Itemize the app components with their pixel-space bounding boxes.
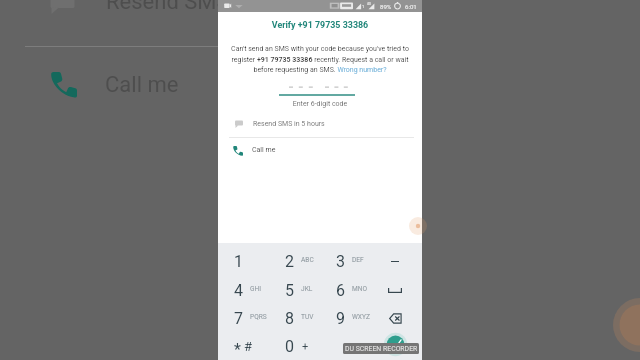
staticText: 3	[336, 252, 345, 271]
staticText: DEF	[352, 256, 364, 264]
staticText: PQRS	[250, 313, 267, 321]
other: Backspace	[389, 313, 402, 324]
staticText: 2	[285, 252, 294, 271]
button[interactable]	[320, 332, 371, 360]
button[interactable]: *	[218, 332, 269, 360]
staticText: 5	[285, 281, 294, 300]
staticText: Call me	[252, 146, 276, 154]
button[interactable]: Call me	[218, 139, 422, 161]
staticText: 1	[234, 252, 243, 271]
button[interactable]: 6	[320, 276, 371, 305]
button[interactable]: 8	[269, 304, 320, 333]
staticText: 0	[285, 337, 294, 356]
button[interactable]: 7	[218, 304, 269, 333]
staticText: 6	[336, 281, 345, 300]
button[interactable]: 0	[269, 332, 320, 360]
staticText: 4G	[367, 2, 371, 6]
button[interactable]: 4	[218, 276, 269, 305]
staticText: 7	[234, 309, 243, 328]
staticText: #	[244, 339, 253, 354]
staticText: Verify +91 79735 33386	[218, 20, 422, 30]
staticText: 8	[285, 309, 294, 328]
staticText: Can't send an SMS with your code because…	[228, 45, 412, 74]
button[interactable]: Resend SMS in 5 hours	[218, 114, 422, 133]
other: Space	[388, 287, 402, 293]
button[interactable]: Backspace	[371, 304, 422, 333]
button[interactable]: 2	[269, 247, 320, 276]
staticText: WXYZ	[352, 313, 370, 321]
staticText: TUV	[301, 313, 314, 321]
button[interactable]: 9	[320, 304, 371, 333]
staticText: 89%	[380, 3, 392, 10]
staticText: Enter 6-digit code	[218, 100, 422, 108]
staticText: Call me	[105, 72, 179, 98]
staticText: 1	[362, 4, 365, 9]
staticText: Resend SMS	[106, 0, 230, 15]
staticText: DU SCREEN RECORDER	[345, 345, 418, 353]
button[interactable]: 3	[320, 247, 371, 276]
button[interactable]: Dash	[371, 247, 422, 276]
staticText: JKL	[301, 285, 313, 293]
staticText: 4	[234, 281, 243, 300]
staticText: ABC	[301, 256, 314, 264]
staticText: 9	[336, 309, 345, 328]
staticText: GHI	[250, 285, 261, 293]
staticText: +	[302, 340, 309, 353]
staticText: *	[234, 340, 241, 359]
button[interactable]: Confirm code	[383, 332, 408, 357]
button[interactable]: Space	[371, 276, 422, 305]
button[interactable]: Confirm code	[371, 332, 422, 360]
button[interactable]: 5	[269, 276, 320, 305]
button[interactable]: 1	[218, 247, 269, 276]
staticText: 6:01	[405, 3, 417, 10]
staticText: Resend SMS in 5 hours	[253, 120, 325, 128]
staticText: MNO	[352, 285, 367, 293]
